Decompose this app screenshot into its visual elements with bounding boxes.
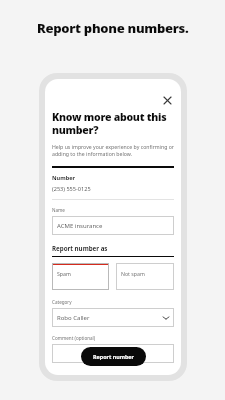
staticText: Number	[52, 174, 76, 182]
staticText: ACME insurance	[57, 222, 103, 230]
staticText: Robo Caller	[57, 314, 90, 322]
button[interactable]: Spam	[52, 263, 109, 290]
staticText: Spam	[57, 270, 71, 277]
button[interactable]	[52, 344, 174, 363]
button[interactable]: Close	[160, 93, 174, 107]
staticText: Not spam	[121, 270, 145, 277]
button[interactable]: ACME insurance	[52, 216, 174, 235]
button[interactable]: Report number	[81, 347, 146, 366]
button[interactable]: Robo Caller	[52, 308, 174, 327]
staticText: Name	[52, 207, 65, 213]
staticText: Category	[52, 299, 72, 305]
staticText: Report number	[93, 353, 134, 360]
staticText: Help us improve your experience by confi…	[52, 143, 174, 157]
button[interactable]: Not spam	[116, 263, 174, 290]
staticText: Report number as	[52, 244, 108, 252]
staticText: (253) 555-0125	[52, 185, 91, 193]
staticText: Report phone numbers.	[37, 19, 189, 37]
staticText: Comment (optional)	[52, 335, 96, 341]
staticText: Know more about this number?	[52, 110, 167, 137]
